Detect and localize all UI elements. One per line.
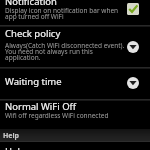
other: Change check policy [127, 41, 139, 53]
staticText: Normal WiFi Off [5, 100, 77, 113]
staticText: Notification [5, 0, 57, 8]
staticText: Always(Catch WiFi disconnected event). Y… [5, 41, 125, 62]
staticText: Wifi off regardless WiFi connected [5, 111, 109, 120]
button[interactable] [0, 0, 150, 26]
button[interactable] [0, 99, 150, 128]
staticText: Help [3, 131, 20, 141]
staticText: Help [5, 145, 26, 150]
other: Notification enabled [127, 3, 139, 15]
button[interactable] [0, 142, 150, 150]
staticText: Check policy [5, 27, 61, 40]
staticText: Display icon on notification bar when ap… [5, 6, 119, 21]
other: Change waiting time [127, 77, 139, 89]
button[interactable] [0, 26, 150, 67]
staticText: Waiting time [5, 75, 62, 88]
button[interactable] [0, 67, 150, 99]
